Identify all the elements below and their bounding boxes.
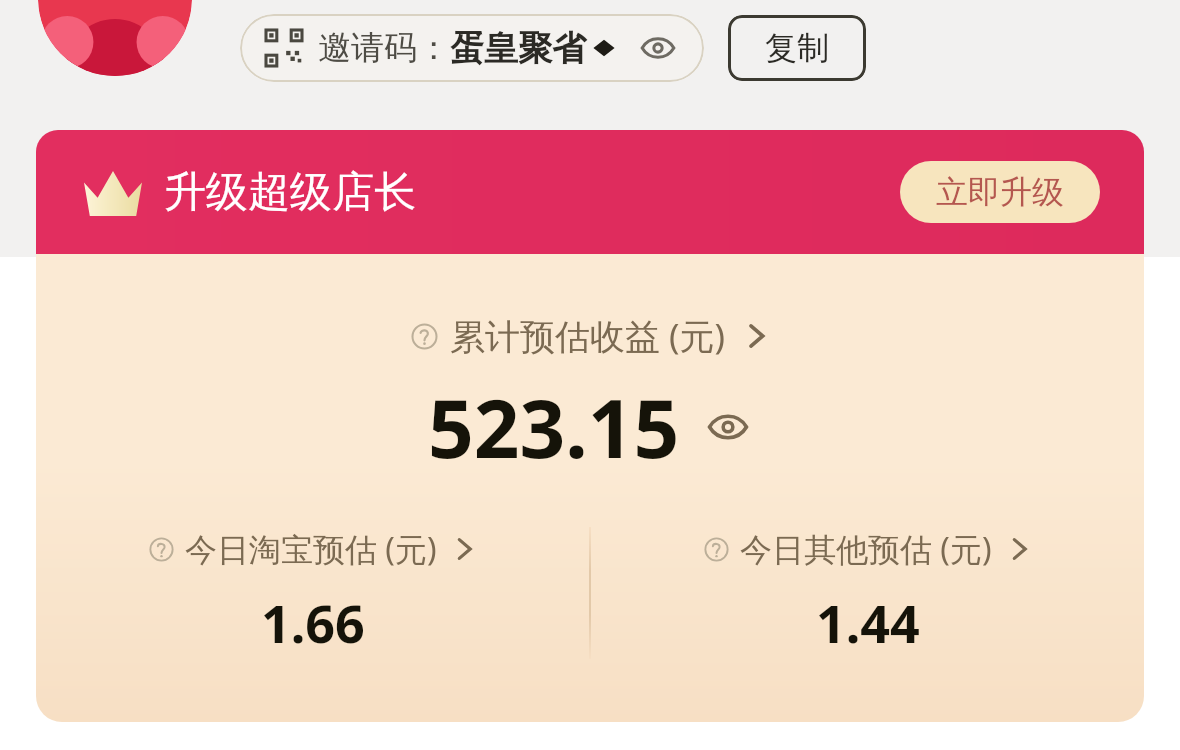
- staticText: 蛋皇聚省: [450, 27, 586, 70]
- staticText: 1.66: [261, 587, 365, 658]
- staticText: 523.15: [428, 372, 680, 481]
- staticText: 1.44: [816, 587, 920, 658]
- staticText: 升级超级店长: [164, 166, 416, 219]
- staticText: 今日淘宝预估 (元): [185, 527, 437, 571]
- button[interactable]: 邀请码：: [240, 14, 704, 82]
- staticText: 复制: [765, 28, 829, 68]
- staticText: 累计预估收益 (元): [450, 312, 726, 360]
- button[interactable]: Toggle balance visibility: [704, 403, 752, 451]
- button[interactable]: 今日淘宝预估 (元): [36, 527, 589, 667]
- button[interactable]: 升级超级店长: [36, 130, 1144, 254]
- button[interactable]: Show invite code: [638, 28, 678, 68]
- button[interactable]: 累计预估收益 (元): [36, 312, 1144, 360]
- button[interactable]: 今日其他预估 (元): [591, 527, 1144, 667]
- button[interactable]: Profile avatar: [38, 0, 192, 76]
- staticText: 立即升级: [936, 172, 1064, 212]
- staticText: 邀请码：: [318, 27, 450, 69]
- button[interactable]: 复制: [728, 15, 866, 81]
- staticText: 今日其他预估 (元): [740, 527, 992, 571]
- button[interactable]: 立即升级: [900, 161, 1100, 223]
